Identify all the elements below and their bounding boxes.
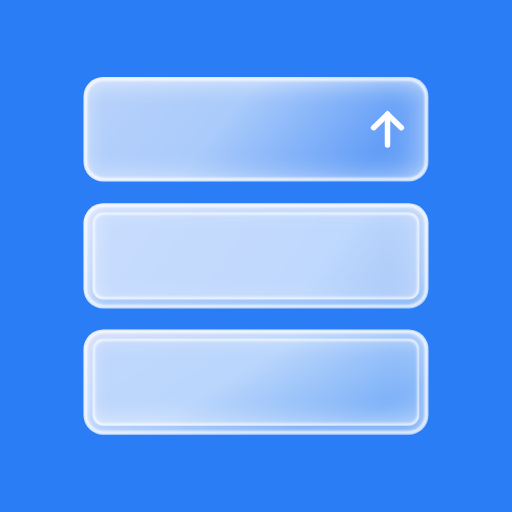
button[interactable]: Upload <box>0 0 512 512</box>
